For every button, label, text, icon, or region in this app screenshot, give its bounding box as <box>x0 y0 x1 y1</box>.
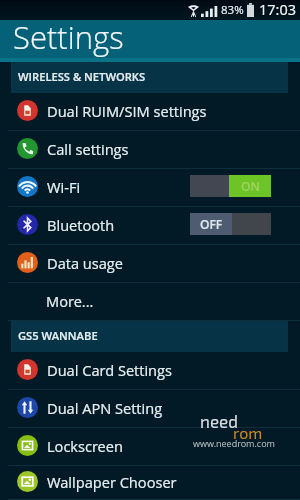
button[interactable]: Bluetooth <box>0 207 300 245</box>
staticText: Settings <box>13 16 124 58</box>
staticText: www.needrom.com <box>193 437 275 449</box>
staticText: Dual RUIM/SIM settings <box>47 101 207 121</box>
staticText: Dual Card Settings <box>47 360 173 380</box>
staticText: Data usage <box>47 253 124 273</box>
staticText: OFF <box>200 216 223 232</box>
staticText: Lockscreen <box>47 436 123 456</box>
button[interactable]: Bluetooth off <box>190 213 271 235</box>
button[interactable]: More... <box>0 283 300 321</box>
staticText: GS5 WANNABE <box>18 328 98 343</box>
button[interactable]: Call settings <box>0 131 300 169</box>
staticText: need <box>200 411 238 431</box>
staticText: rom <box>233 423 263 442</box>
staticText: 17:03 <box>259 0 297 20</box>
button[interactable]: Wallpaper Chooser <box>0 466 300 500</box>
staticText: Bluetooth <box>47 215 115 235</box>
staticText: Call settings <box>47 139 129 159</box>
staticText: Dual APN Setting <box>47 398 163 418</box>
staticText: ON <box>241 178 260 194</box>
staticText: 83% <box>221 2 244 18</box>
button[interactable]: Data usage <box>0 245 300 283</box>
button[interactable]: Wi-Fi <box>0 169 300 207</box>
staticText: More... <box>46 291 94 311</box>
staticText: Wallpaper Chooser <box>47 472 177 492</box>
staticText: Wi-Fi <box>47 177 81 197</box>
button[interactable]: Wi-Fi on <box>190 175 271 197</box>
button[interactable]: Dual RUIM/SIM settings <box>0 93 300 131</box>
button[interactable]: Lockscreen <box>0 428 300 466</box>
staticText: WIRELESS & NETWORKS <box>18 69 146 84</box>
button[interactable]: Dual Card Settings <box>0 352 300 390</box>
button[interactable]: Dual APN Setting <box>0 390 300 428</box>
